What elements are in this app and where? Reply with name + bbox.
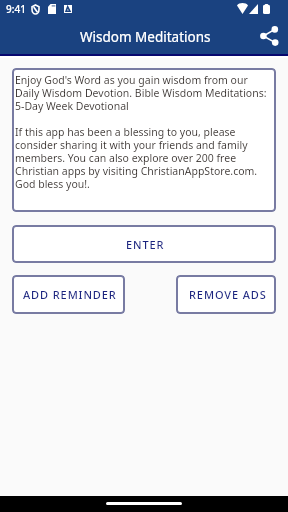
button[interactable]: Share [256, 22, 284, 50]
staticText: Wisdom Meditations [80, 28, 211, 46]
button[interactable]: REMOVE ADS [176, 275, 276, 314]
staticText: ADD REMINDER [23, 287, 117, 302]
staticText: REMOVE ADS [189, 287, 267, 302]
staticText: Enjoy God's Word as you gain wisdom from… [15, 73, 273, 192]
button[interactable]: ENTER [12, 225, 276, 263]
staticText: ENTER [126, 237, 165, 252]
staticText: 9:41 [6, 2, 26, 16]
button[interactable]: ADD REMINDER [12, 275, 125, 314]
